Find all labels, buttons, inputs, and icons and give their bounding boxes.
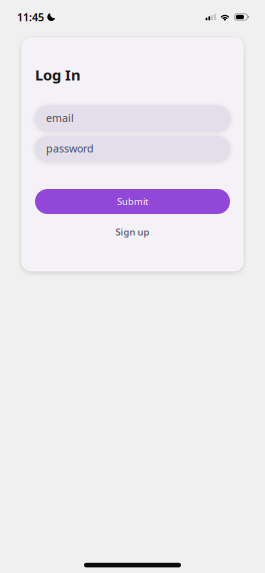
staticText: Sign up [115, 226, 149, 238]
staticText: Log In [35, 65, 81, 84]
button[interactable]: password [35, 136, 230, 161]
button[interactable]: Sign up [35, 226, 230, 238]
button[interactable]: email [35, 105, 230, 130]
button[interactable]: Submit [35, 189, 230, 214]
staticText: password [46, 141, 94, 156]
staticText: 11:45 [17, 10, 44, 24]
staticText: Submit [117, 195, 148, 208]
staticText: email [46, 111, 74, 125]
